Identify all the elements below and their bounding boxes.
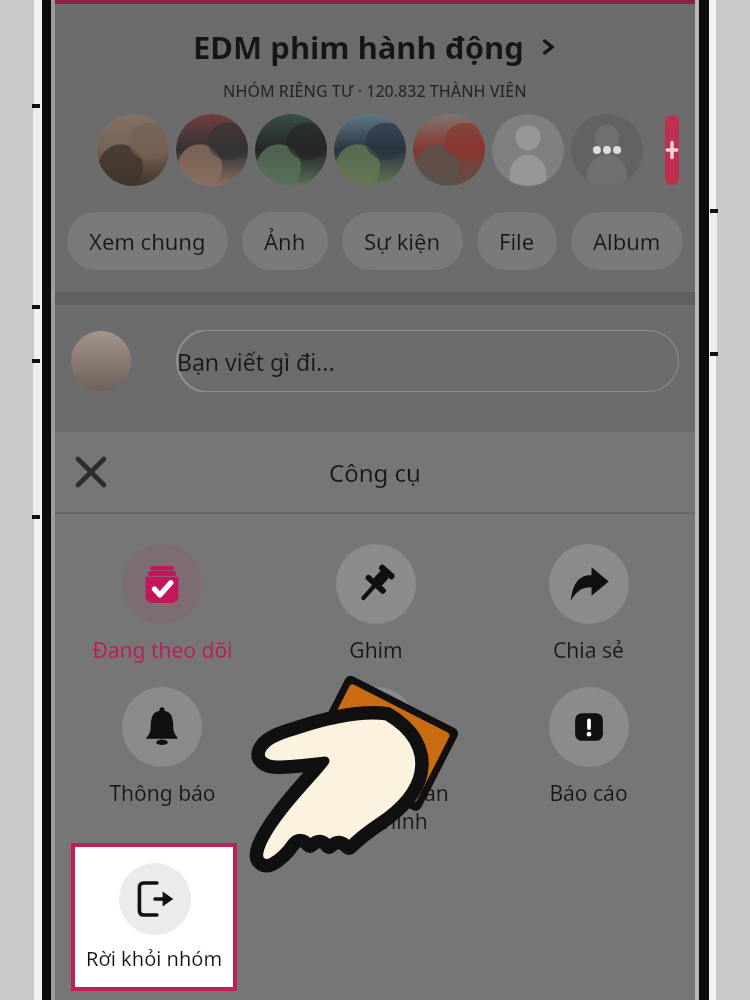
staticText: Rời khỏi nhóm	[86, 945, 223, 972]
button[interactable]: Member photo	[255, 114, 327, 186]
button[interactable]: Chia sẻ	[482, 544, 695, 665]
staticText: File	[499, 226, 535, 256]
button[interactable]: Đang theo dõi	[55, 544, 269, 665]
button[interactable]: Album	[571, 212, 683, 270]
button[interactable]: File	[477, 212, 557, 270]
button[interactable]: Bạn viết gì đi...	[149, 330, 679, 392]
button[interactable]: Xem chung	[67, 212, 228, 270]
staticText: Thêm vào màn hình chính	[302, 779, 449, 835]
staticText: Thông báo	[109, 779, 216, 808]
staticText: Báo cáo	[549, 779, 628, 808]
staticText: Ảnh	[264, 226, 306, 256]
button[interactable]: Member photo	[176, 114, 248, 186]
staticText: Sự kiện	[364, 226, 441, 256]
button[interactable]: Your profile	[71, 331, 131, 391]
staticText: Chia sẻ	[553, 636, 624, 665]
button[interactable]: Member	[492, 114, 564, 186]
button[interactable]: Close	[63, 444, 119, 500]
button[interactable]: Member photo	[413, 114, 485, 186]
button[interactable]: Mời	[665, 115, 679, 185]
button[interactable]: Báo cáo	[482, 687, 695, 808]
button[interactable]: More members	[571, 114, 643, 186]
staticText: EDM phim hành động	[193, 26, 524, 68]
staticText: Album	[593, 226, 661, 256]
button[interactable]: Rời khỏi nhóm	[75, 847, 233, 987]
button[interactable]: Ghim	[269, 544, 482, 665]
staticText: Xem chung	[89, 226, 206, 256]
button[interactable]: Sự kiện	[342, 212, 463, 270]
staticText: Đang theo dõi	[92, 636, 233, 665]
button[interactable]: Member photo	[97, 114, 169, 186]
staticText: NHÓM RIÊNG TƯ · 120.832 THÀNH VIÊN	[223, 80, 527, 102]
button[interactable]: Member photo	[334, 114, 406, 186]
staticText: Công cụ	[329, 456, 421, 489]
button[interactable]: Thêm vào màn hình chính	[269, 687, 482, 835]
staticText: Ghim	[349, 636, 403, 665]
button[interactable]: Thông báo	[55, 687, 269, 808]
button[interactable]: Ảnh	[242, 212, 328, 270]
staticText: Bạn viết gì đi...	[177, 346, 335, 377]
